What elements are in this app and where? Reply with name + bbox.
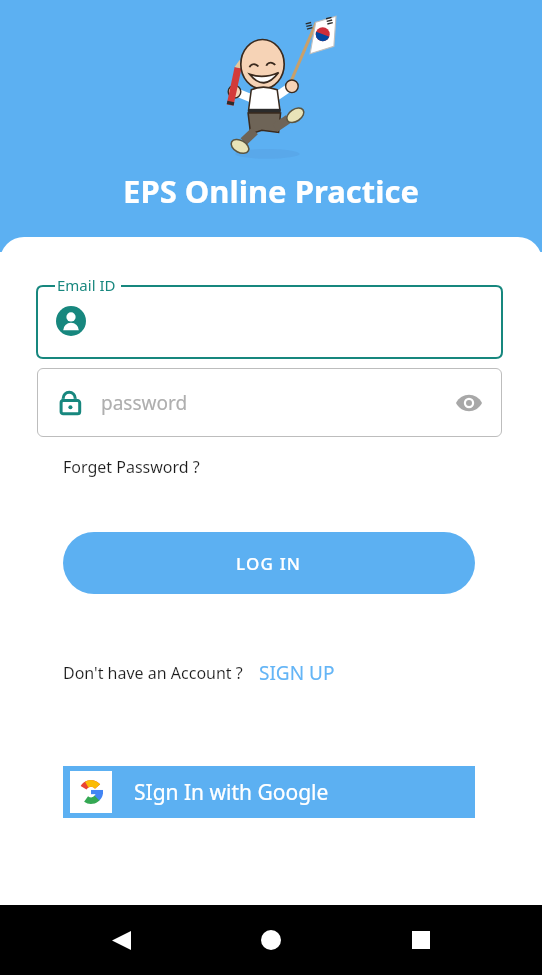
staticText: password (101, 390, 188, 416)
button[interactable]: Forget Password ? (57, 452, 206, 482)
button[interactable]: SIGN UP (253, 656, 341, 690)
staticText: LOG IN (236, 552, 302, 575)
button[interactable]: Home (248, 917, 294, 963)
staticText: SIGN UP (259, 660, 335, 686)
button[interactable]: Back (98, 917, 144, 963)
staticText: Email ID (57, 275, 116, 295)
button[interactable]: password (37, 368, 502, 437)
button[interactable]: LOG IN (63, 532, 475, 594)
button[interactable] (37, 286, 502, 358)
staticText: EPS Online Practice (0, 170, 542, 212)
button[interactable]: Show password (449, 383, 489, 423)
staticText: Forget Password ? (63, 456, 200, 478)
staticText: Don't have an Account ? (63, 662, 243, 684)
button[interactable]: Recent apps (398, 917, 444, 963)
staticText: SIgn In with Google (134, 778, 329, 807)
button[interactable]: SIgn In with Google (63, 766, 475, 818)
